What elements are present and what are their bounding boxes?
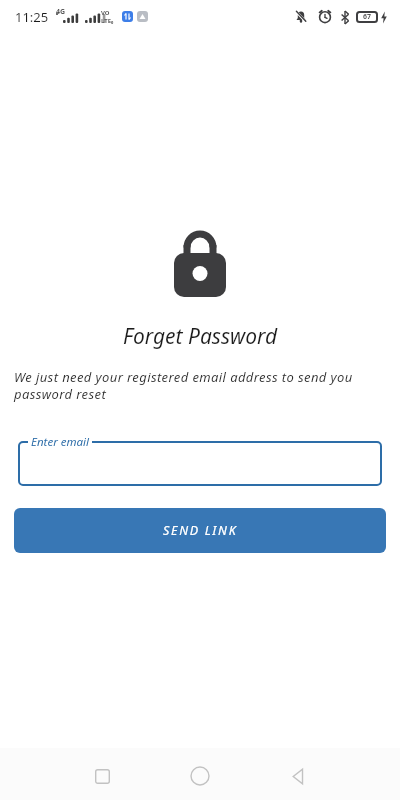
button[interactable] — [84, 762, 120, 790]
staticText: VO — [101, 9, 110, 17]
staticText: Forget Password — [0, 322, 400, 351]
staticText: 4G — [56, 7, 66, 17]
staticText: Enter email — [31, 434, 89, 450]
staticText: 67 — [363, 12, 372, 22]
button[interactable] — [182, 762, 218, 790]
staticText: We just need your registered email addre… — [14, 368, 353, 403]
staticText: LTE₀ — [101, 17, 114, 25]
button[interactable] — [18, 441, 382, 486]
button[interactable] — [280, 762, 316, 790]
button[interactable]: SEND LINK — [14, 508, 386, 553]
staticText: 11:25 — [15, 8, 49, 26]
staticText: SEND LINK — [163, 522, 238, 539]
